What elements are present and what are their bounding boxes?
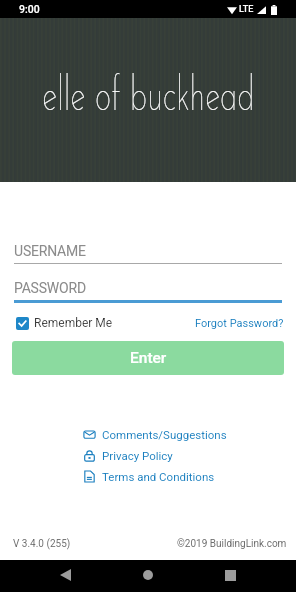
- button[interactable]: Remember Me: [16, 316, 113, 330]
- button[interactable]: Privacy Policy: [83, 449, 173, 462]
- staticText: elle of buckhead: [42, 72, 255, 122]
- button[interactable]: Home: [131, 560, 165, 592]
- staticText: PASSWORD: [14, 280, 86, 296]
- button[interactable]: Back: [48, 560, 82, 592]
- staticText: Forgot Password?: [195, 317, 284, 330]
- button[interactable]: Terms and Conditions: [83, 470, 215, 483]
- button[interactable]: Recent apps: [213, 560, 247, 592]
- staticText: Terms and Conditions: [102, 470, 215, 483]
- staticText: Privacy Policy: [102, 449, 173, 462]
- staticText: V 3.4.0 (255): [13, 538, 71, 550]
- staticText: LTE: [239, 4, 254, 15]
- button[interactable]: Enter: [12, 341, 284, 375]
- staticText: ©2019 BuildingLink.com: [177, 538, 287, 550]
- staticText: 9:00: [19, 3, 40, 15]
- button[interactable]: Forgot Password?: [195, 317, 284, 330]
- staticText: Remember Me: [34, 316, 113, 330]
- staticText: Enter: [130, 349, 167, 367]
- staticText: USERNAME: [14, 243, 86, 259]
- staticText: Comments/Suggestions: [102, 428, 227, 441]
- button[interactable]: Comments/Suggestions: [83, 428, 227, 441]
